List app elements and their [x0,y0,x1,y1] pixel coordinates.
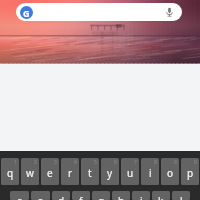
button[interactable]: w [21,158,39,185]
staticText: l [180,194,183,200]
button[interactable]: e [41,158,59,185]
staticText: h [118,194,125,200]
staticText: 3 [54,159,57,166]
button[interactable]: o [161,158,179,185]
staticText: p [187,166,194,180]
staticText: e [47,166,53,180]
staticText: w [26,166,34,180]
staticText: f [79,194,83,200]
staticText: 6 [114,159,117,166]
staticText: t [88,166,92,180]
staticText: o [167,166,174,180]
staticText: 5 [94,159,97,166]
staticText: q [7,166,14,180]
button[interactable]: y [101,158,119,185]
staticText: 4 [74,159,77,166]
button[interactable]: t [81,158,99,185]
button[interactable]: k [152,191,170,200]
button[interactable]: Google [16,3,182,21]
staticText: s [38,194,43,200]
staticText: 2 [34,159,37,166]
button[interactable]: h [112,191,130,200]
button[interactable]: a [10,191,29,200]
button[interactable]: s [31,191,50,200]
staticText: u [127,166,134,180]
other: Voice search [165,7,174,18]
button[interactable]: u [121,158,139,185]
staticText: a [17,194,23,200]
staticText: 7 [134,159,137,166]
button[interactable]: g [92,191,110,200]
staticText: r [68,166,73,180]
staticText: 9 [174,159,177,166]
staticText: i [149,166,152,180]
button[interactable]: j [132,191,150,200]
button[interactable]: i [141,158,159,185]
button[interactable]: l [172,191,190,200]
other: Google [20,6,33,19]
staticText: d [58,194,65,200]
button[interactable]: r [61,158,79,185]
staticText: g [98,194,105,200]
staticText: 0 [194,159,197,166]
staticText: k [158,194,164,200]
staticText: y [107,166,113,180]
staticText: j [140,194,143,200]
staticText: 8 [154,159,157,166]
button[interactable]: f [72,191,90,200]
staticText: 1 [14,159,17,166]
button[interactable]: p [181,158,199,185]
button[interactable]: d [52,191,70,200]
staticText: G [23,7,30,19]
button[interactable]: q [1,158,19,185]
